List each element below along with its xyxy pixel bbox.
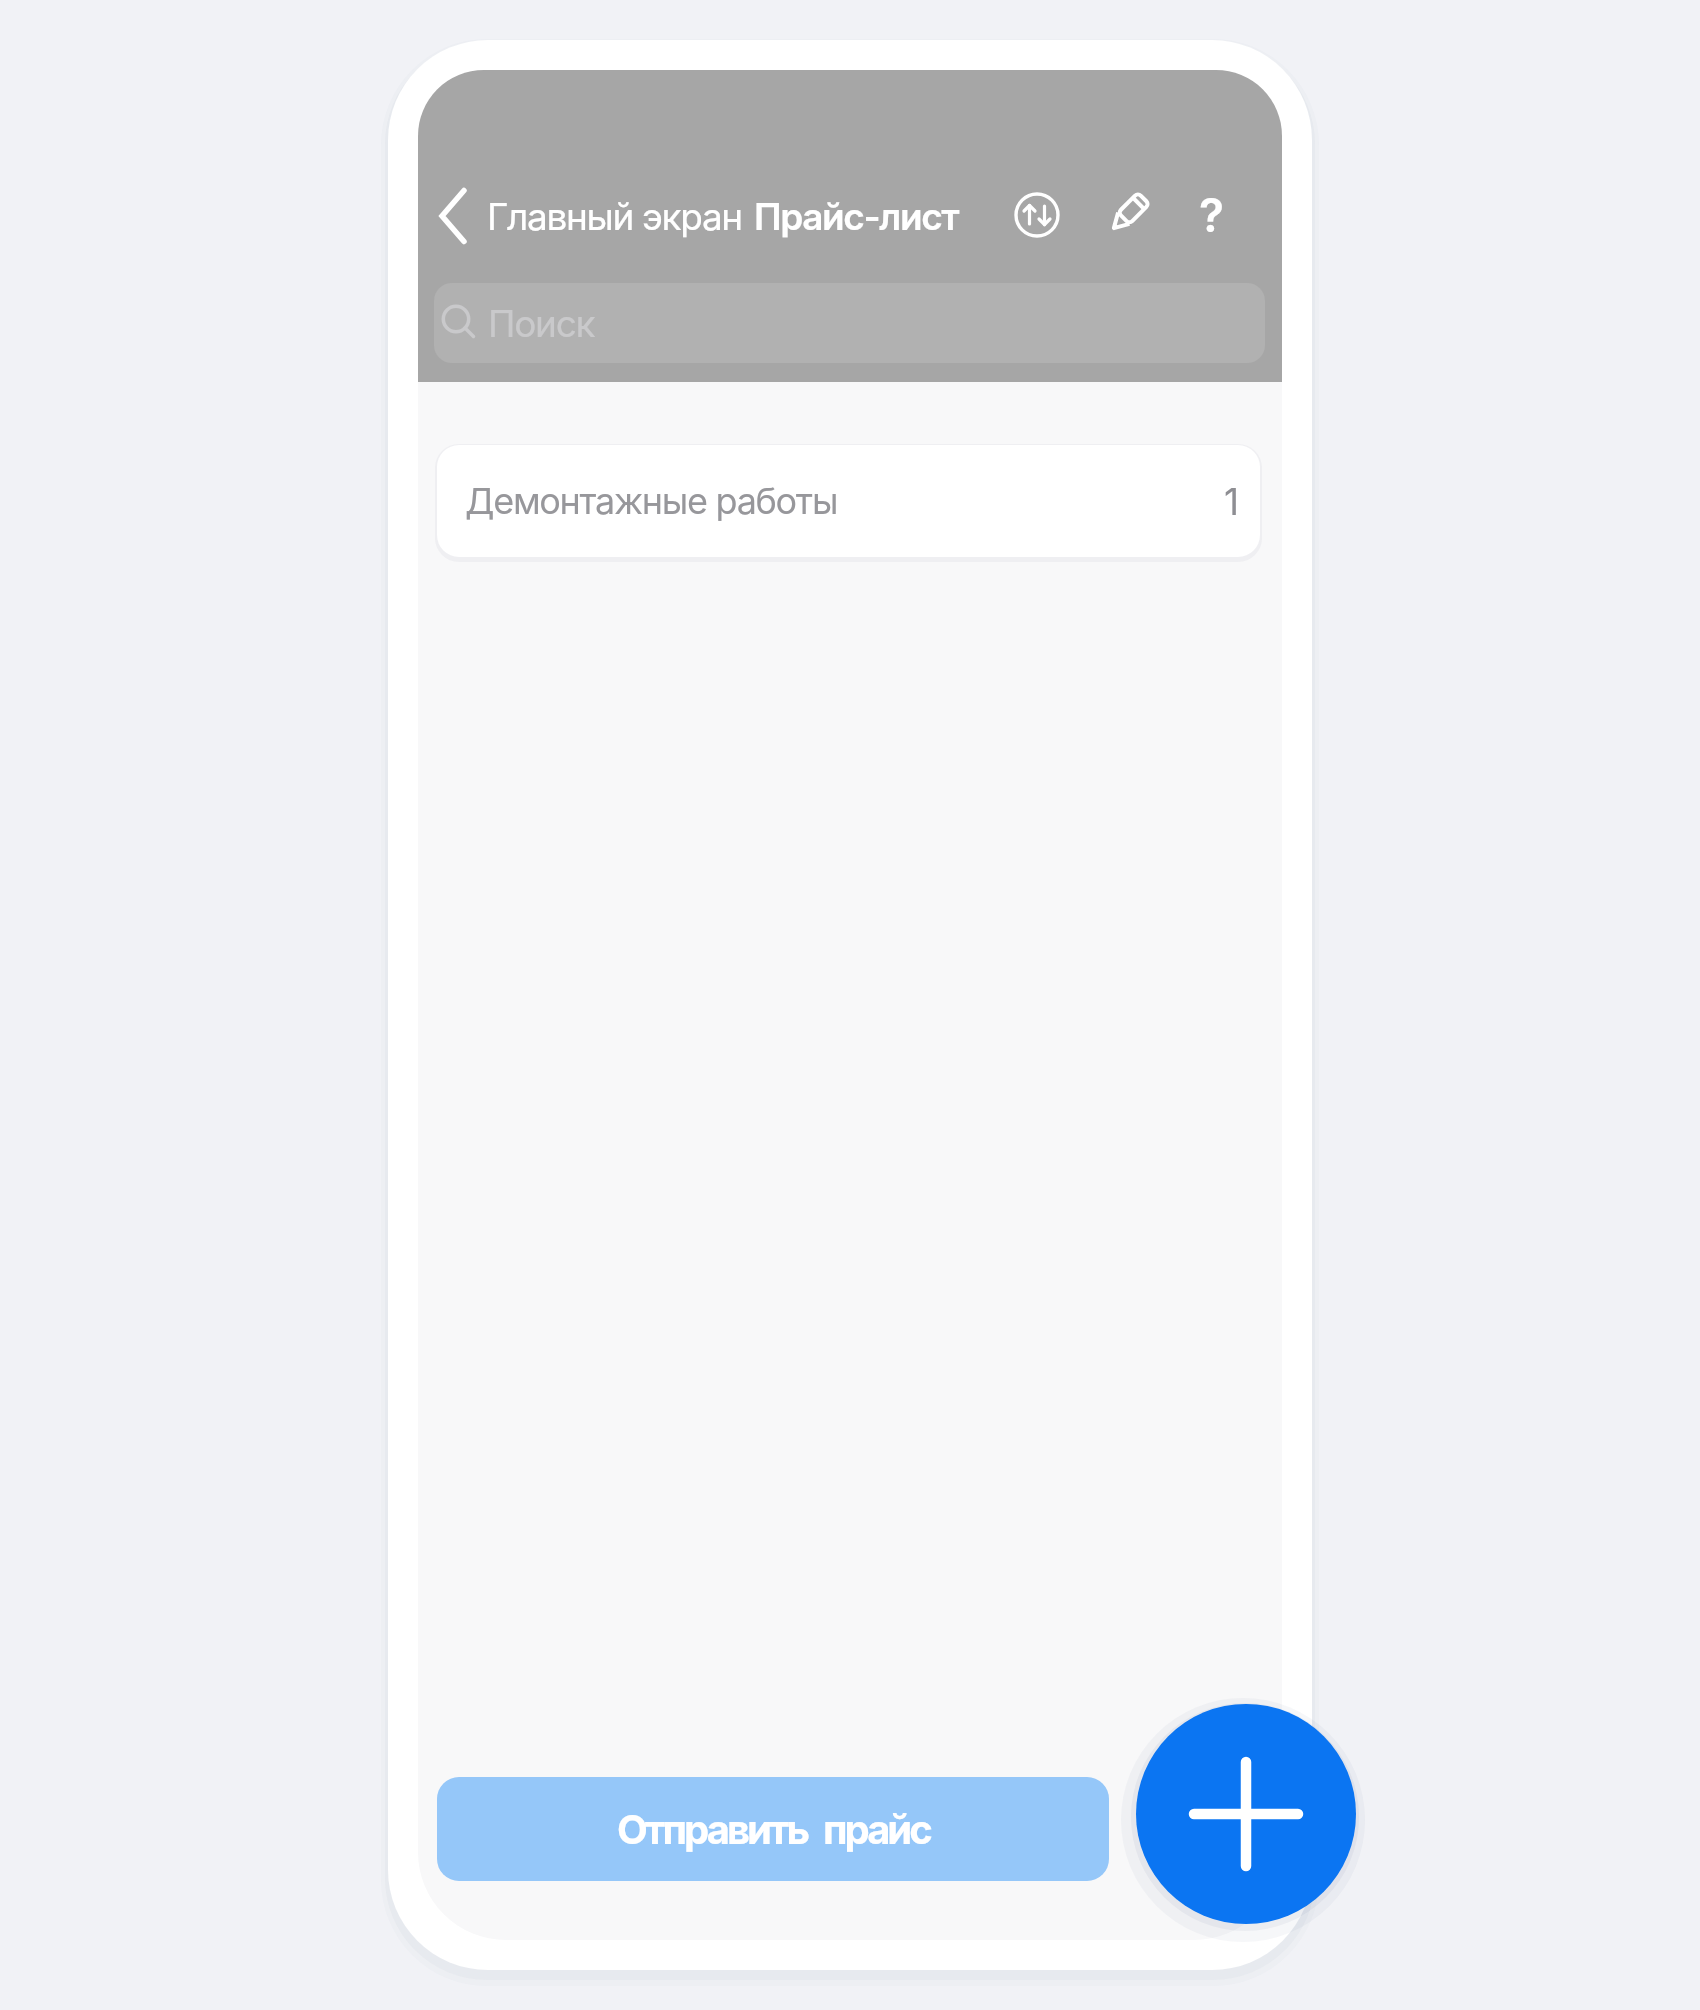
button[interactable] [1007,185,1067,245]
staticText: 1 [1224,479,1240,524]
button[interactable]: Поиск [434,283,1265,363]
button[interactable] [1098,184,1158,244]
button[interactable]: ? [1181,185,1241,245]
staticText: Прайс-лист [754,194,959,239]
button[interactable]: Демонтажные работы [437,445,1260,557]
staticText: прайс [823,1805,930,1853]
staticText: Главный экран [487,194,742,239]
staticText: ? [1199,187,1224,243]
button[interactable] [1136,1704,1356,1924]
staticText: Поиск [488,301,595,346]
button[interactable]: Отправить [437,1777,1109,1881]
button[interactable]: Главный экран [432,186,742,246]
staticText: Демонтажные работы [465,479,838,523]
staticText: Отправить [617,1805,808,1853]
